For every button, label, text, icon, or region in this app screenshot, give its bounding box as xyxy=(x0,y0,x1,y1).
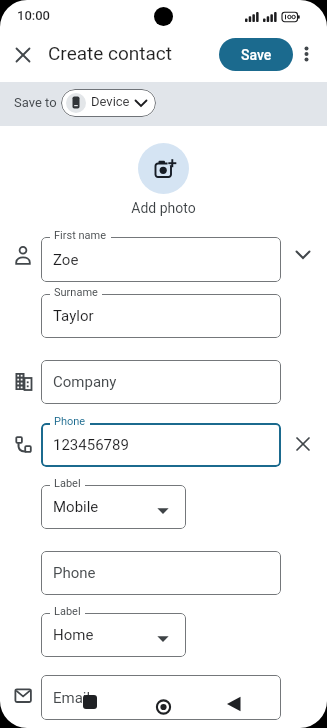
button[interactable]: Company xyxy=(41,360,281,404)
staticText: Taylor xyxy=(53,307,94,325)
staticText: Home xyxy=(53,626,94,644)
staticText: Phone xyxy=(54,415,86,428)
staticText: Add photo xyxy=(0,200,327,216)
staticText: Email xyxy=(53,689,91,707)
staticText: First name xyxy=(54,229,107,242)
staticText: 10:00 xyxy=(17,8,51,23)
button[interactable]: Email xyxy=(41,675,281,720)
staticText: Phone xyxy=(53,564,96,582)
staticText: Device xyxy=(91,94,130,109)
button[interactable]: Home xyxy=(41,613,186,657)
button[interactable]: Mobile xyxy=(41,485,186,529)
staticText: 123456789 xyxy=(53,436,129,454)
staticText: Mobile xyxy=(53,498,99,516)
button[interactable]: Save xyxy=(219,38,293,71)
staticText: Save xyxy=(241,47,272,63)
button[interactable] xyxy=(61,89,156,117)
staticText: Save to xyxy=(14,95,57,110)
button[interactable]: Taylor xyxy=(41,294,281,338)
staticText: Zoe xyxy=(53,251,79,269)
staticText: Create contact xyxy=(48,42,173,64)
button[interactable] xyxy=(138,143,189,194)
staticText: Label xyxy=(54,477,81,490)
button[interactable]: Phone xyxy=(41,551,281,595)
button[interactable]: 123456789 xyxy=(41,423,281,467)
staticText: Surname xyxy=(54,286,98,299)
button[interactable]: Zoe xyxy=(41,237,281,282)
staticText: Company xyxy=(53,373,117,391)
staticText: Label xyxy=(54,605,81,618)
